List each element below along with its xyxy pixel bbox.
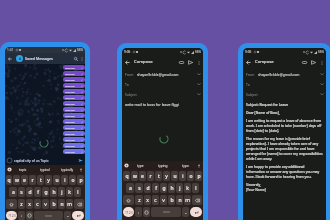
button[interactable]: msg line bbox=[63, 107, 85, 112]
button[interactable]: msg line bbox=[63, 149, 85, 154]
button[interactable]: Back bbox=[6, 55, 14, 63]
button[interactable]: k bbox=[184, 183, 191, 193]
button[interactable]: msg line bbox=[63, 113, 85, 118]
button[interactable]: msg line bbox=[63, 131, 85, 136]
button[interactable]: g bbox=[42, 187, 49, 197]
button[interactable]: msg line bbox=[63, 137, 85, 142]
button[interactable]: d bbox=[144, 183, 151, 193]
button[interactable]: y bbox=[163, 171, 170, 181]
button[interactable]: More options bbox=[195, 59, 202, 66]
button[interactable]: v bbox=[42, 199, 49, 209]
button[interactable]: Send bbox=[186, 58, 195, 67]
button[interactable]: a bbox=[126, 183, 134, 193]
button[interactable]: type bbox=[129, 161, 152, 170]
button[interactable]: f bbox=[34, 187, 41, 197]
button[interactable]: r bbox=[147, 171, 154, 181]
button[interactable]: n bbox=[58, 199, 65, 209]
button[interactable]: t bbox=[155, 171, 162, 181]
button[interactable]: ?123 bbox=[123, 207, 134, 217]
button[interactable]: Attach file bbox=[177, 58, 186, 67]
button[interactable]: a bbox=[9, 187, 17, 197]
button[interactable]: z bbox=[18, 199, 25, 209]
button[interactable]: c bbox=[34, 199, 41, 209]
button[interactable]: Voice input bbox=[196, 163, 201, 168]
button[interactable]: w bbox=[131, 171, 138, 181]
button[interactable]: p bbox=[77, 175, 84, 185]
button[interactable] bbox=[72, 211, 84, 220]
button[interactable] bbox=[26, 211, 33, 220]
button[interactable]: r bbox=[29, 175, 36, 185]
button[interactable]: typing bbox=[152, 161, 174, 170]
button[interactable]: Back bbox=[244, 58, 253, 67]
button[interactable]: More options bbox=[79, 56, 84, 61]
button[interactable]: j bbox=[58, 187, 65, 197]
button[interactable] bbox=[123, 195, 134, 205]
button[interactable]: u bbox=[171, 171, 178, 181]
button[interactable]: f bbox=[152, 183, 159, 193]
button[interactable]: l bbox=[74, 187, 81, 197]
button[interactable]: x bbox=[144, 195, 151, 205]
button[interactable]: typo bbox=[174, 161, 196, 170]
button[interactable]: m bbox=[184, 195, 191, 205]
button[interactable] bbox=[18, 211, 25, 220]
button[interactable]: c bbox=[152, 195, 159, 205]
button[interactable]: p bbox=[195, 171, 202, 181]
button[interactable]: w bbox=[13, 175, 20, 185]
button[interactable]: msg line bbox=[63, 77, 85, 82]
button[interactable]: Attach file bbox=[300, 58, 309, 67]
button[interactable]: Send bbox=[77, 157, 83, 163]
button[interactable]: More options bbox=[318, 59, 325, 66]
button[interactable]: x bbox=[26, 199, 33, 209]
button[interactable] bbox=[143, 207, 150, 217]
button[interactable]: o bbox=[69, 175, 76, 185]
button[interactable] bbox=[151, 207, 181, 217]
button[interactable] bbox=[74, 199, 84, 209]
button[interactable]: d bbox=[26, 187, 33, 197]
button[interactable]: v bbox=[160, 195, 167, 205]
button[interactable] bbox=[6, 199, 17, 209]
button[interactable] bbox=[190, 207, 202, 217]
button[interactable]: msg line bbox=[63, 143, 85, 148]
button[interactable]: u bbox=[53, 175, 60, 185]
button[interactable]: l bbox=[192, 183, 199, 193]
button[interactable]: h bbox=[50, 187, 57, 197]
button[interactable]: msg line bbox=[63, 125, 85, 130]
button[interactable]: msg line bbox=[63, 101, 85, 106]
button[interactable]: e bbox=[21, 175, 28, 185]
button[interactable]: . bbox=[182, 207, 189, 217]
button[interactable]: msg line bbox=[63, 119, 85, 124]
button[interactable]: y bbox=[45, 175, 52, 185]
button[interactable]: h bbox=[168, 183, 175, 193]
button[interactable] bbox=[34, 211, 63, 220]
button[interactable]: msg line bbox=[63, 71, 85, 76]
button[interactable]: b bbox=[168, 195, 175, 205]
button[interactable]: b bbox=[50, 199, 57, 209]
button[interactable]: msg line bbox=[63, 89, 85, 94]
button[interactable]: q bbox=[6, 175, 12, 185]
button[interactable]: typical bbox=[34, 165, 56, 174]
button[interactable]: t bbox=[37, 175, 44, 185]
button[interactable]: k bbox=[66, 187, 73, 197]
button[interactable]: ?123 bbox=[6, 211, 17, 220]
button[interactable]: g bbox=[160, 183, 167, 193]
button[interactable]: s bbox=[18, 187, 25, 197]
button[interactable]: m bbox=[66, 199, 73, 209]
button[interactable]: i bbox=[179, 171, 186, 181]
button[interactable]: i bbox=[61, 175, 68, 185]
button[interactable]: msg line bbox=[63, 95, 85, 100]
button[interactable]: typically bbox=[56, 165, 78, 174]
button[interactable]: j bbox=[176, 183, 183, 193]
button[interactable] bbox=[135, 207, 142, 217]
button[interactable]: Keyboard settings bbox=[7, 167, 12, 172]
button[interactable]: topic bbox=[12, 165, 34, 174]
button[interactable]: . bbox=[64, 211, 71, 220]
button[interactable]: z bbox=[135, 195, 143, 205]
button[interactable]: Keyboard settings bbox=[124, 163, 129, 168]
button[interactable]: o bbox=[187, 171, 194, 181]
button[interactable]: Voice input bbox=[78, 167, 83, 172]
button[interactable]: n bbox=[176, 195, 183, 205]
button[interactable]: q bbox=[123, 171, 130, 181]
button[interactable]: msg line bbox=[63, 65, 85, 70]
button[interactable]: e bbox=[139, 171, 146, 181]
button[interactable] bbox=[192, 195, 202, 205]
